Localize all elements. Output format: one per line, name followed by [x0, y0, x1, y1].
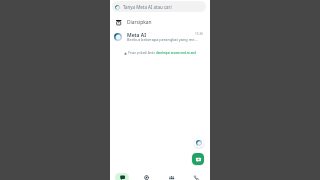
button[interactable]: New chat	[192, 153, 204, 165]
staticText: Berikut beberapa perangkat yang memiliki…	[127, 37, 199, 42]
staticText: Meta AI	[127, 32, 147, 39]
button[interactable]: Diarsipkan	[110, 15, 210, 29]
button[interactable]: Tanya Meta AI atau cari	[112, 1, 206, 12]
staticText: 15.36	[195, 32, 204, 36]
button[interactable]: Chats	[110, 168, 134, 180]
staticText: Diarsipkan	[127, 19, 152, 26]
button[interactable]: Updates	[134, 168, 158, 180]
button[interactable]: Communities	[158, 168, 183, 180]
staticText: dienkripsi secara end-to-end	[156, 51, 196, 55]
staticText: Pesan pribadi Anda	[128, 51, 156, 55]
button[interactable]: Meta AI	[194, 138, 204, 148]
staticText: Tanya Meta AI atau cari	[123, 4, 172, 10]
button[interactable]: Calls	[183, 168, 208, 180]
button[interactable]: Meta AI	[110, 29, 210, 45]
